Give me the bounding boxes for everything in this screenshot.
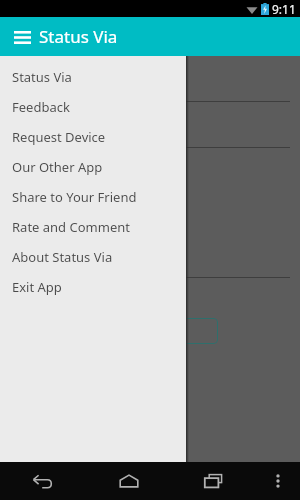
- button[interactable]: Feedback: [0, 92, 186, 122]
- staticText: Feedback: [12, 98, 70, 116]
- button[interactable]: More options: [256, 462, 300, 500]
- button[interactable]: Check: [108, 318, 218, 344]
- staticText: Exit App: [12, 278, 62, 296]
- button[interactable]: Request Device: [0, 122, 186, 152]
- staticText: About Status Via: [12, 248, 113, 266]
- button[interactable]: About Status Via: [0, 242, 186, 272]
- button[interactable]: Exit App: [0, 272, 186, 302]
- button[interactable]: Recent apps: [171, 462, 256, 500]
- button[interactable]: Status Via: [0, 62, 186, 92]
- button[interactable]: Home: [86, 462, 171, 500]
- staticText: Status Via: [12, 68, 72, 86]
- staticText: Share to Your Friend: [12, 188, 137, 206]
- staticText: Request Device: [12, 128, 106, 146]
- button[interactable]: Share to Your Friend: [0, 182, 186, 212]
- button[interactable]: Our Other App: [0, 152, 186, 182]
- staticText: 9:11: [272, 1, 296, 17]
- staticText: Our Other App: [12, 158, 103, 176]
- button[interactable]: Rate and Comment: [0, 212, 186, 242]
- button[interactable]: Back: [0, 462, 86, 500]
- staticText: Status Via: [39, 25, 118, 48]
- button[interactable]: Open navigation drawer: [9, 24, 35, 50]
- staticText: Rate and Comment: [12, 218, 130, 236]
